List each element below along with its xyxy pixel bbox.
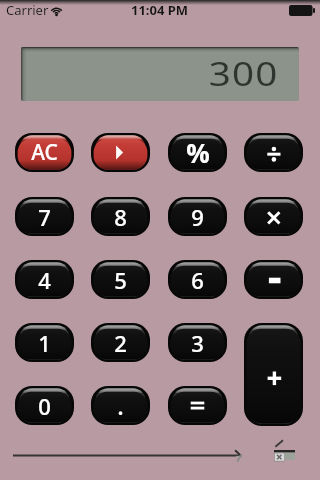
button[interactable]: 0 xyxy=(15,386,74,425)
staticText: 0 xyxy=(38,391,51,421)
staticText: 1 xyxy=(38,328,51,358)
button[interactable]: Backspace xyxy=(91,133,150,172)
button[interactable]: Minus xyxy=(244,260,303,299)
button[interactable]: 2 xyxy=(91,323,150,362)
staticText: 8 xyxy=(114,202,127,232)
staticText: AC xyxy=(31,138,58,167)
button[interactable]: Divide xyxy=(244,133,303,172)
button[interactable]: Multiply xyxy=(244,197,303,236)
staticText: 2 xyxy=(114,328,127,358)
staticText: 4 xyxy=(38,265,51,295)
staticText: 7 xyxy=(38,202,51,232)
staticText: 11:04 PM xyxy=(131,1,189,19)
button[interactable]: 8 xyxy=(91,197,150,236)
button[interactable]: 6 xyxy=(168,260,227,299)
button[interactable]: 1 xyxy=(15,323,74,362)
staticText: 6 xyxy=(191,265,204,295)
staticText: 5 xyxy=(114,265,127,295)
button[interactable]: 9 xyxy=(168,197,227,236)
staticText: Carrier xyxy=(6,1,49,19)
staticText: % xyxy=(186,135,210,170)
staticText: 9 xyxy=(191,202,204,232)
staticText: 3 xyxy=(191,328,204,358)
button[interactable]: 3 xyxy=(168,323,227,362)
button[interactable]: 7 xyxy=(15,197,74,236)
button[interactable]: Plus xyxy=(244,323,303,426)
button[interactable]: Equals xyxy=(168,386,227,425)
staticText: . xyxy=(117,389,124,422)
button[interactable]: % xyxy=(168,133,227,172)
button[interactable]: Banner xyxy=(274,450,295,460)
button[interactable]: 4 xyxy=(15,260,74,299)
button[interactable]: . xyxy=(91,386,150,425)
button[interactable]: AC xyxy=(15,133,74,172)
button[interactable]: 5 xyxy=(91,260,150,299)
staticText: 300 xyxy=(209,51,279,96)
